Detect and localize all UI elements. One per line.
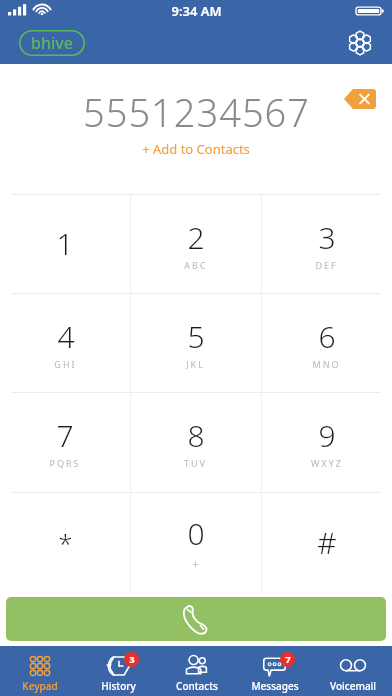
button[interactable]: 9 bbox=[261, 392, 392, 492]
button[interactable]: 2 bbox=[130, 194, 261, 293]
staticText: WXYZ bbox=[311, 457, 343, 469]
staticText: 4 bbox=[57, 316, 75, 357]
staticText: 5 bbox=[187, 316, 205, 357]
staticText: Voicemail bbox=[330, 679, 376, 693]
staticText: 2 bbox=[187, 217, 205, 258]
staticText: 3 bbox=[318, 217, 336, 258]
button[interactable]: * bbox=[0, 492, 130, 592]
button[interactable]: 5 bbox=[130, 293, 261, 392]
button[interactable]: Voicemail bbox=[314, 646, 392, 696]
button[interactable]: Keypad bbox=[0, 646, 79, 696]
button[interactable]: Backspace bbox=[340, 84, 380, 114]
button[interactable]: bhive bbox=[18, 29, 86, 57]
button[interactable]: 3 bbox=[79, 646, 158, 696]
staticText: GHI bbox=[54, 358, 77, 370]
staticText: Messages bbox=[251, 679, 299, 693]
staticText: 0 bbox=[187, 513, 205, 554]
staticText: Contacts bbox=[176, 679, 218, 693]
staticText: ABC bbox=[184, 259, 208, 271]
button[interactable]: 1 bbox=[0, 194, 130, 293]
staticText: 9 bbox=[318, 415, 336, 456]
staticText: 7 bbox=[285, 653, 291, 666]
staticText: Keypad bbox=[22, 679, 58, 693]
button[interactable]: Contacts bbox=[158, 646, 236, 696]
staticText: JKL bbox=[186, 358, 205, 370]
button[interactable]: 3 bbox=[261, 194, 392, 293]
button[interactable]: 8 bbox=[130, 392, 261, 492]
button[interactable]: + Add to Contacts bbox=[136, 138, 256, 160]
staticText: DEF bbox=[315, 259, 338, 271]
staticText: 3 bbox=[129, 653, 135, 666]
staticText: 5551234567 bbox=[83, 86, 310, 138]
staticText: MNO bbox=[312, 358, 341, 370]
staticText: 8 bbox=[187, 415, 205, 456]
staticText: 1 bbox=[56, 223, 74, 264]
staticText: * bbox=[58, 525, 73, 560]
button[interactable]: Menu bbox=[340, 23, 380, 63]
button[interactable]: 7 bbox=[236, 646, 314, 696]
staticText: 6 bbox=[318, 316, 336, 357]
staticText: + Add to Contacts bbox=[142, 140, 250, 158]
staticText: 7 bbox=[56, 415, 74, 456]
staticText: bhive bbox=[31, 32, 73, 54]
button[interactable]: 4 bbox=[0, 293, 130, 392]
button[interactable]: 7 bbox=[0, 392, 130, 492]
button[interactable]: 6 bbox=[261, 293, 392, 392]
staticText: + bbox=[192, 556, 201, 571]
staticText: TUV bbox=[184, 457, 207, 469]
button[interactable]: Call bbox=[6, 597, 386, 641]
button[interactable]: 0 bbox=[130, 492, 261, 592]
staticText: # bbox=[317, 522, 337, 563]
staticText: PQRS bbox=[49, 457, 81, 469]
button[interactable]: # bbox=[261, 492, 392, 592]
staticText: History bbox=[101, 679, 136, 693]
staticText: 9:34 AM bbox=[171, 2, 222, 20]
